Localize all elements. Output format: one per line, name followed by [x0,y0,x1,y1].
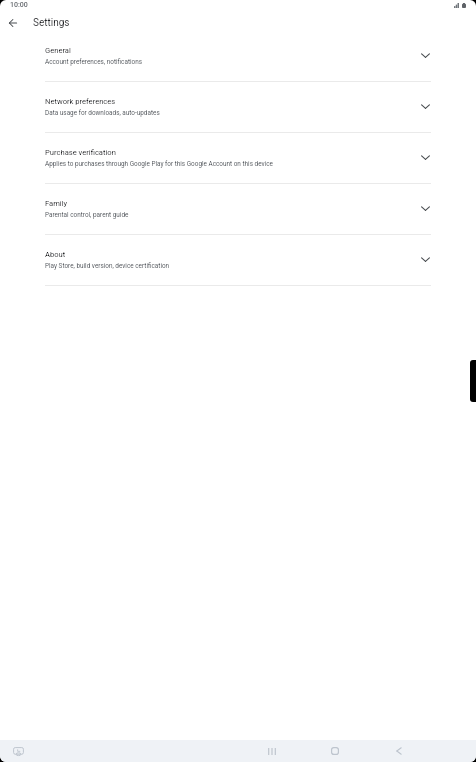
button[interactable]: Recent apps [248,741,296,761]
staticText: 10:00 [10,1,28,9]
staticText: General [45,46,71,55]
staticText: Settings [33,17,70,29]
staticText: Family [45,199,68,208]
button[interactable]: Navigate up [1,11,25,35]
button[interactable]: Family [0,183,476,234]
button[interactable]: Hide keyboard [8,741,28,761]
button[interactable]: Edge panel handle [470,360,476,402]
staticText: Applies to purchases through Google Play… [45,160,273,168]
staticText: Account preferences, notifications [45,58,143,66]
button[interactable]: General [0,30,476,81]
staticText: Data usage for downloads, auto-updates [45,109,160,117]
button[interactable]: Network preferences [0,81,476,132]
staticText: Parental control, parent guide [45,211,129,219]
button[interactable]: Home [311,741,359,761]
button[interactable]: Purchase verification [0,132,476,183]
staticText: Purchase verification [45,148,116,157]
staticText: Network preferences [45,97,116,106]
staticText: About [45,250,66,259]
staticText: Play Store, build version, device certif… [45,262,170,270]
button[interactable]: Back [375,741,423,761]
button[interactable]: About [0,234,476,285]
